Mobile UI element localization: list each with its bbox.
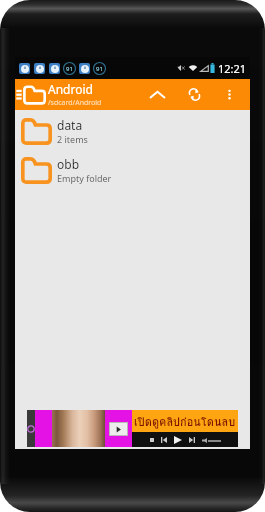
button[interactable]: data (15, 116, 250, 146)
button[interactable]: More options (212, 79, 246, 110)
button[interactable]: Refresh (176, 79, 212, 110)
button[interactable]: obb (15, 155, 250, 185)
staticText: data (57, 117, 83, 133)
staticText: /sdcard/Android (48, 98, 102, 108)
staticText: 12:21 (218, 61, 247, 76)
staticText: 2 items (57, 133, 88, 145)
button[interactable]: Up one level (138, 79, 176, 110)
staticText: 91 (96, 65, 103, 73)
staticText: Empty folder (57, 172, 112, 184)
staticText: obb (57, 156, 80, 172)
staticText: เปิดดูคลิปก่อนโดนลบ (134, 413, 236, 430)
staticText: 91 (66, 65, 73, 73)
staticText: Android (48, 81, 93, 97)
button[interactable]: Navigation drawer (15, 79, 46, 110)
button[interactable]: Advertisement (27, 410, 238, 447)
